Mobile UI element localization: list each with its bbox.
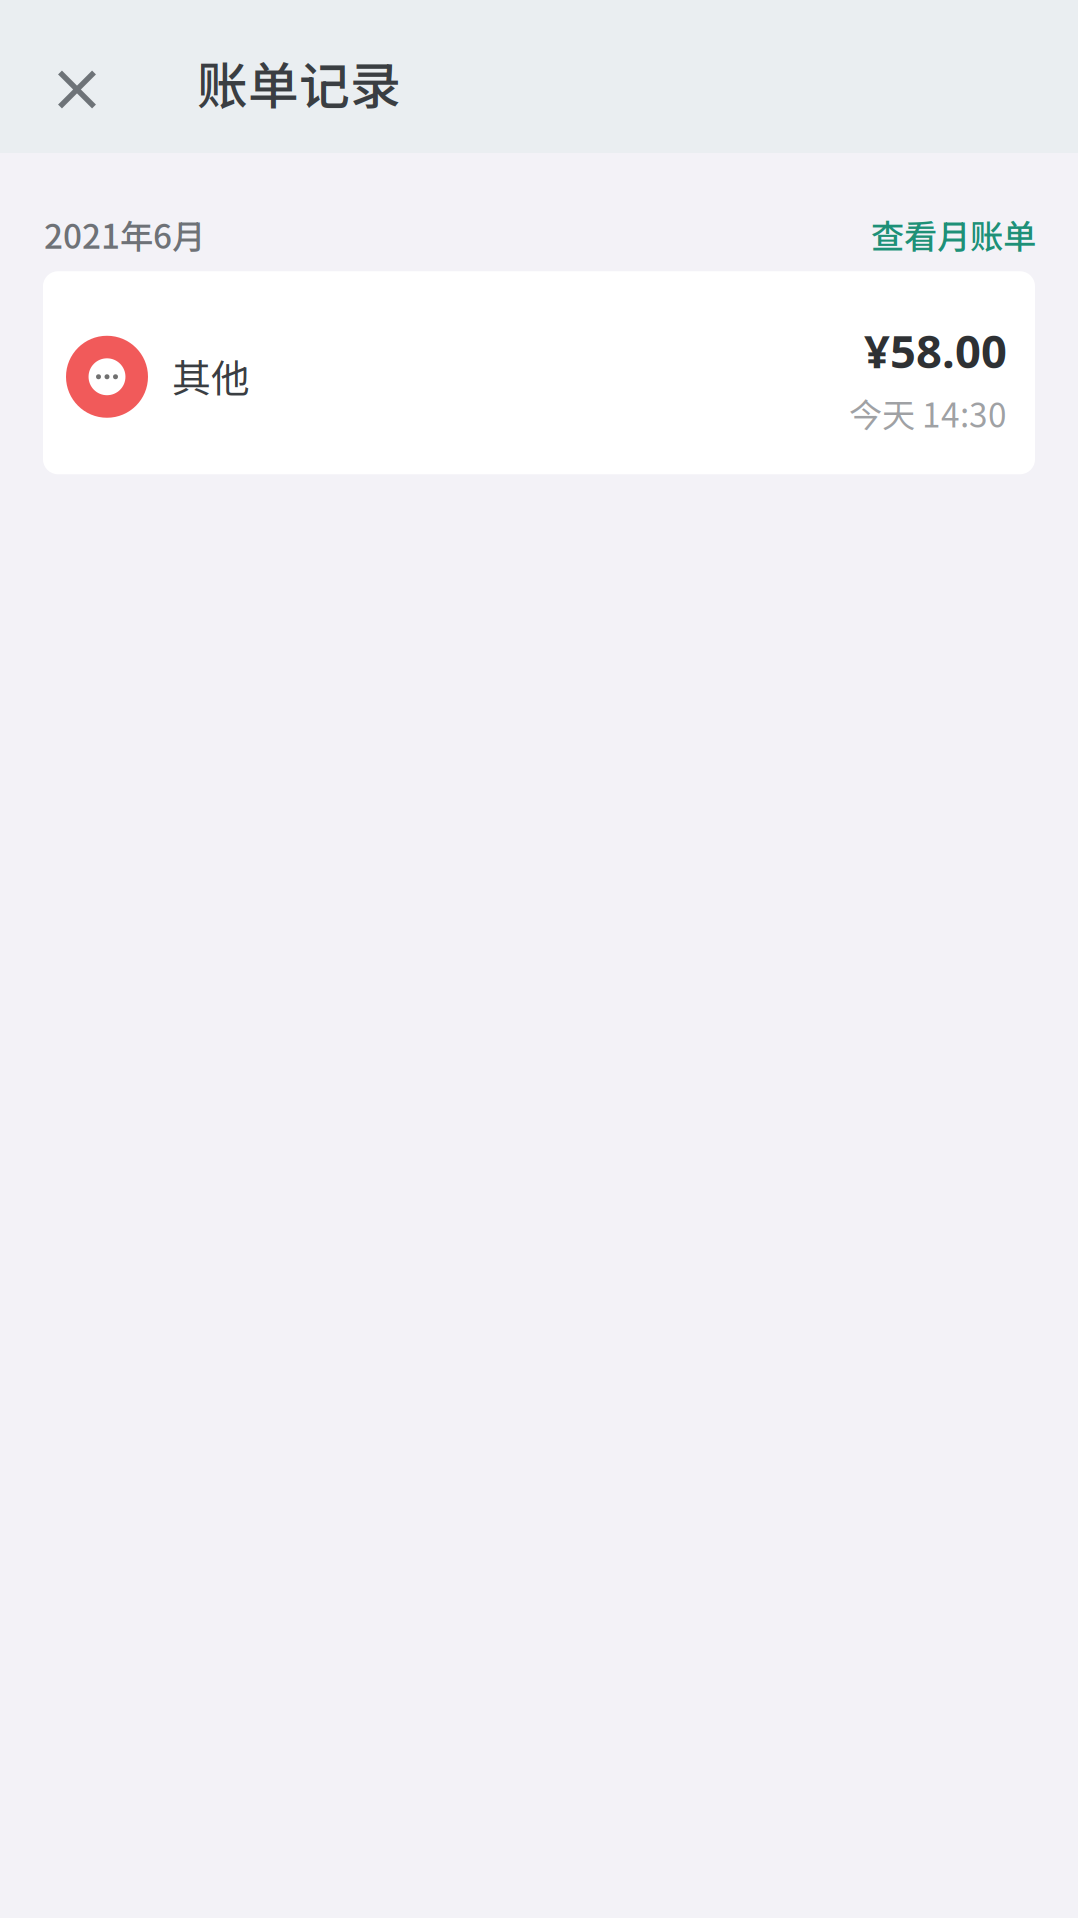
button[interactable]: 关闭 bbox=[29, 41, 125, 137]
button[interactable]: 其他 bbox=[43, 271, 1035, 474]
staticText: 2021年6月 bbox=[44, 210, 205, 258]
staticText: 其他 bbox=[172, 348, 250, 404]
staticText: ¥58.00 bbox=[864, 320, 1007, 381]
button[interactable]: 查看月账单 bbox=[871, 210, 1036, 258]
staticText: 账单记录 bbox=[197, 46, 401, 119]
staticText: 查看月账单 bbox=[871, 210, 1036, 258]
staticText: 今天 14:30 bbox=[849, 389, 1007, 437]
